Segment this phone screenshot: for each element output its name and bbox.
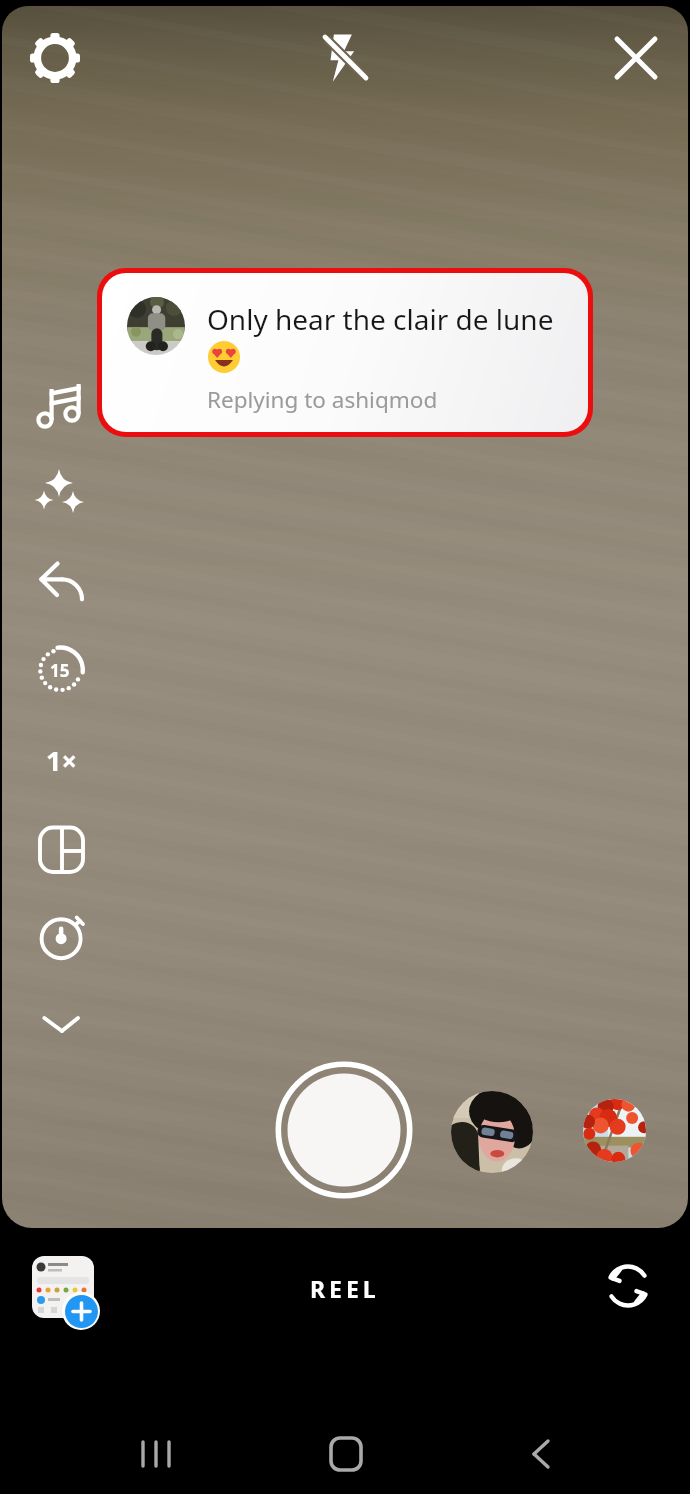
button[interactable] (34, 379, 88, 433)
button[interactable] (328, 1436, 364, 1472)
button[interactable] (130, 1437, 182, 1471)
button[interactable] (34, 910, 90, 966)
button[interactable] (612, 34, 660, 82)
staticText: Only hear the clair de lune (207, 300, 554, 338)
button[interactable] (30, 33, 80, 83)
button[interactable] (32, 468, 86, 522)
button[interactable] (524, 1437, 558, 1471)
staticText: 1× (46, 742, 77, 779)
button[interactable] (32, 1256, 102, 1334)
button[interactable] (451, 1091, 533, 1173)
button[interactable] (34, 557, 88, 611)
button[interactable] (36, 826, 86, 876)
button[interactable]: Only hear the clair de lune (97, 268, 593, 437)
staticText: Replying to ashiqmod (207, 384, 438, 415)
button[interactable] (275, 1061, 413, 1199)
button[interactable] (320, 33, 370, 83)
staticText: REEL (310, 1273, 380, 1304)
button[interactable] (602, 1260, 654, 1312)
button[interactable] (40, 1005, 84, 1045)
button[interactable]: 1× (34, 737, 88, 783)
button[interactable]: REEL (270, 1262, 420, 1314)
button[interactable]: 15 (31, 642, 91, 702)
staticText: 15 (50, 659, 70, 682)
button[interactable] (583, 1099, 646, 1162)
